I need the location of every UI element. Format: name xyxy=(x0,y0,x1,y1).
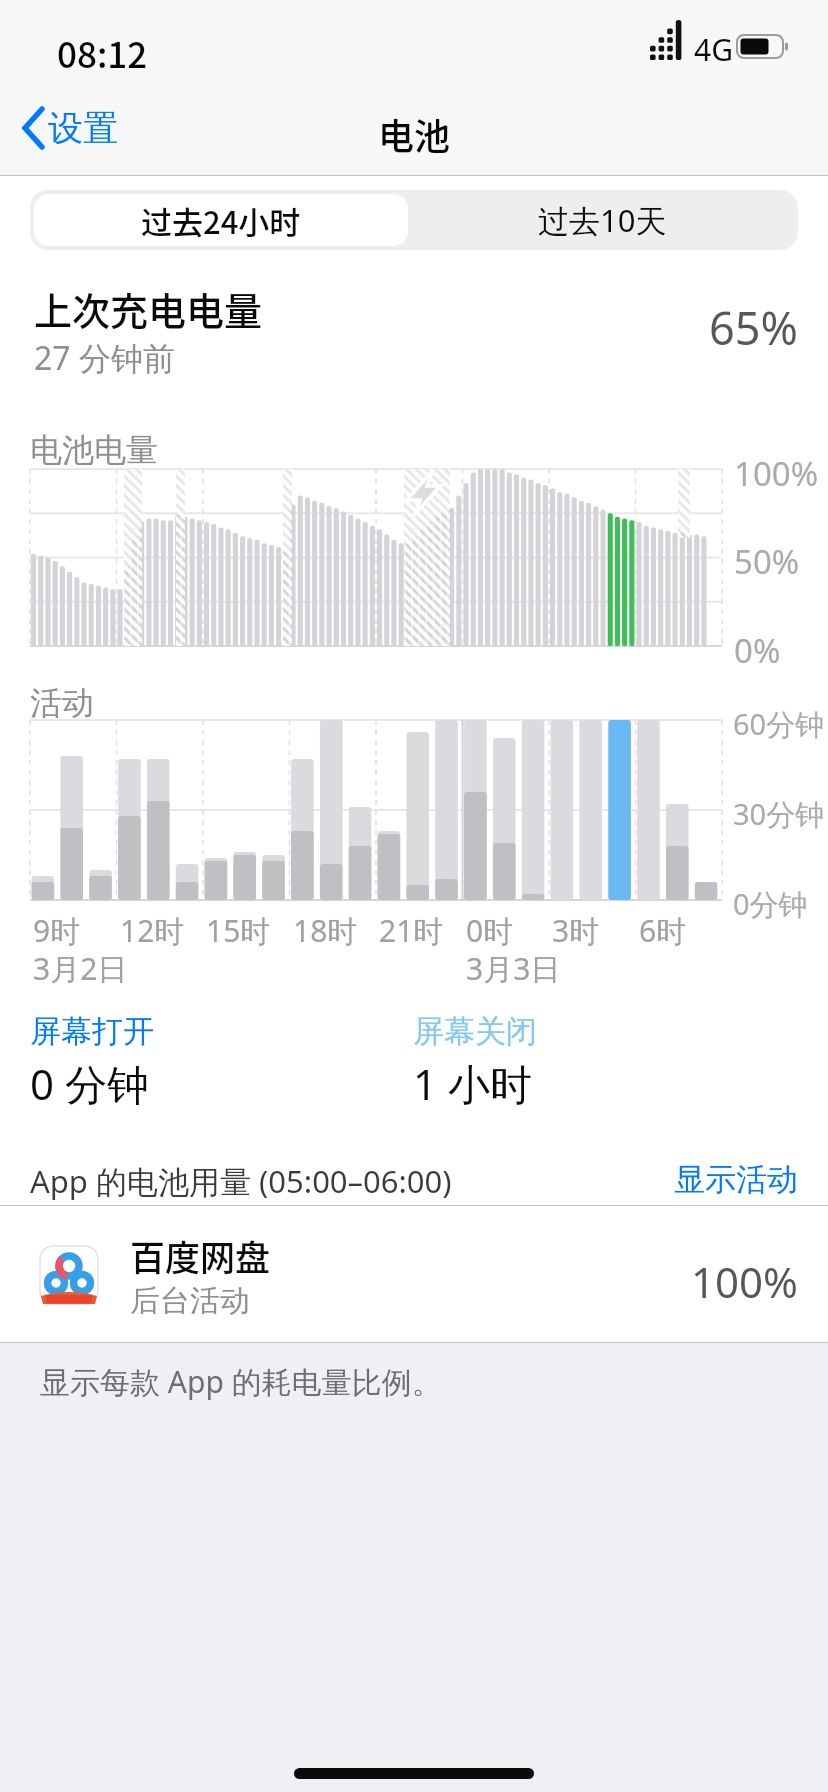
staticText: 4G xyxy=(694,29,733,70)
staticText: 18时 xyxy=(293,910,358,951)
staticText: 设置 xyxy=(48,106,118,150)
button[interactable]: 过去10天 xyxy=(410,194,794,246)
button[interactable]: 过去24小时 xyxy=(34,194,408,246)
staticText: 21时 xyxy=(379,910,444,951)
staticText: 65% xyxy=(709,297,798,358)
staticText: 后台活动 xyxy=(130,1282,250,1320)
staticText: 50% xyxy=(734,539,800,584)
staticText: 3时 xyxy=(552,910,600,951)
staticText: 08:12 xyxy=(57,27,148,78)
staticText: 15时 xyxy=(206,910,271,951)
staticText: 0时 xyxy=(466,910,514,951)
staticText: 0分钟 xyxy=(733,884,808,924)
staticText: 3月3日 xyxy=(466,948,561,989)
staticText: 100% xyxy=(734,451,819,496)
staticText: 9时 xyxy=(33,910,81,951)
staticText: 12时 xyxy=(120,910,185,951)
staticText: 显示每款 App 的耗电量比例。 xyxy=(40,1361,442,1402)
staticText: App 的电池用量 (05:00–06:00) xyxy=(30,1160,452,1202)
button[interactable]: 显示活动 xyxy=(674,1160,798,1199)
staticText: 上次充电电量 xyxy=(34,281,263,336)
staticText: 1 小时 xyxy=(413,1055,532,1112)
staticText: 电池 xyxy=(378,108,451,160)
staticText: 活动 xyxy=(30,683,94,723)
staticText: 过去24小时 xyxy=(141,198,301,243)
staticText: 过去10天 xyxy=(538,199,667,241)
staticText: 3月2日 xyxy=(33,948,128,989)
staticText: 百度网盘 xyxy=(130,1230,271,1281)
button[interactable]: 设置 xyxy=(18,105,118,151)
staticText: 屏幕关闭 xyxy=(413,1012,537,1051)
staticText: 60分钟 xyxy=(733,704,825,744)
staticText: 屏幕打开 xyxy=(30,1012,154,1051)
staticText: 0 分钟 xyxy=(30,1055,149,1112)
staticText: 100% xyxy=(691,1253,798,1310)
staticText: 0% xyxy=(734,628,781,673)
staticText: 电池电量 xyxy=(30,430,158,470)
staticText: 30分钟 xyxy=(733,794,825,834)
staticText: 27 分钟前 xyxy=(34,336,175,380)
staticText: 6时 xyxy=(639,910,687,951)
button[interactable]: 百度网盘 xyxy=(0,1206,828,1342)
